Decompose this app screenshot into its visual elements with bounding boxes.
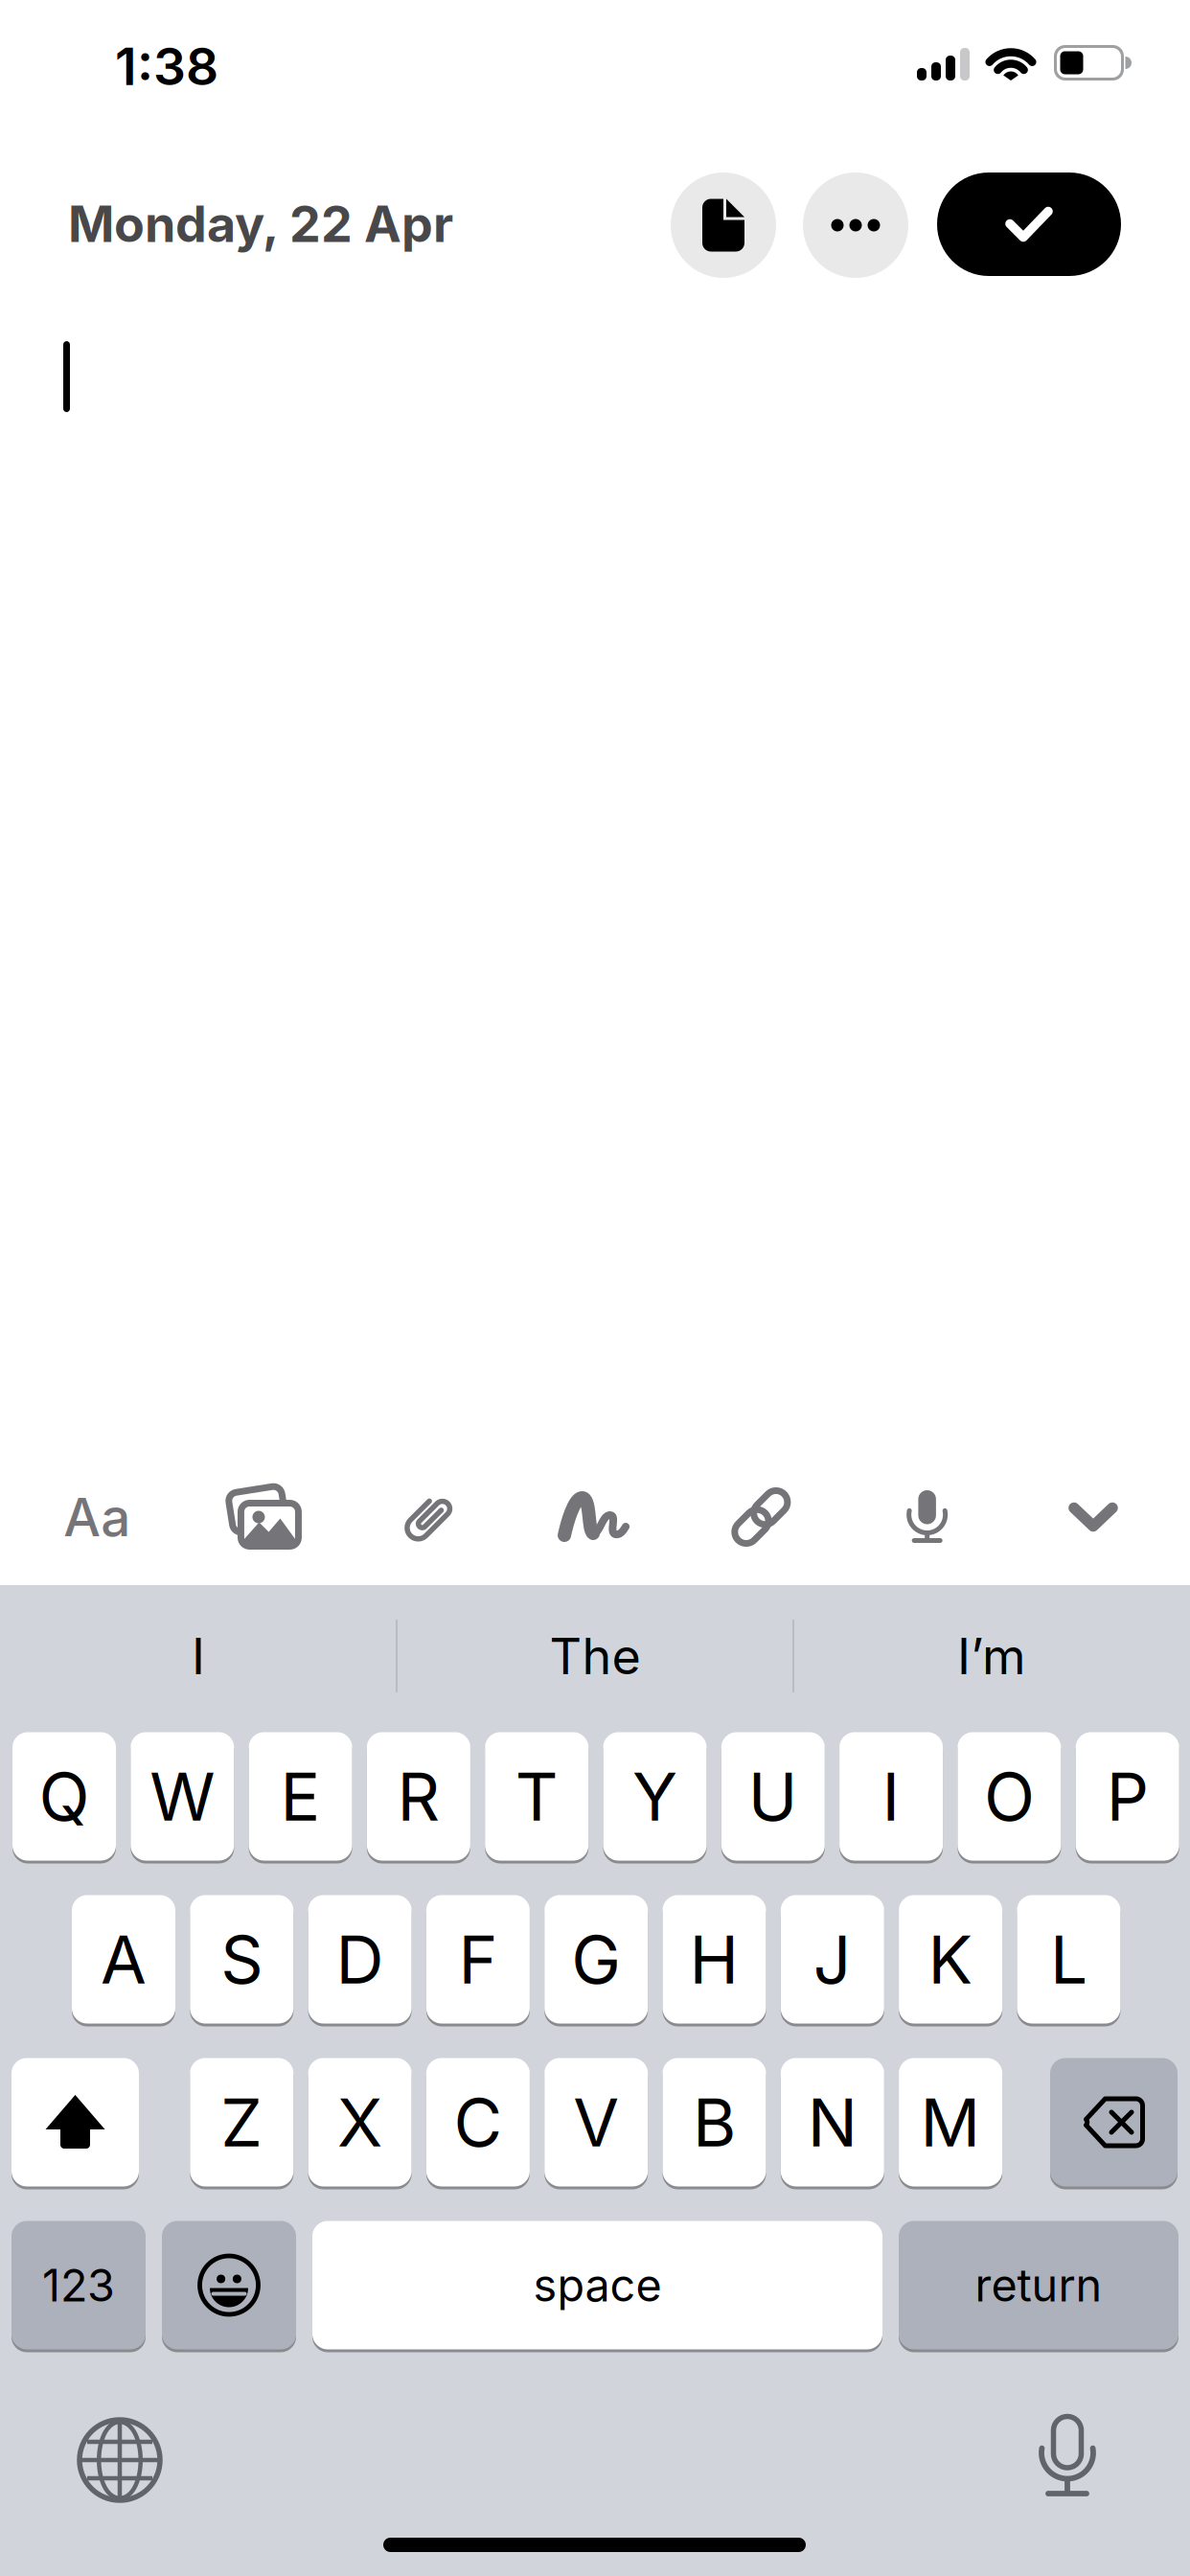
staticText: S: [221, 1920, 263, 1999]
button[interactable]: Y: [603, 1731, 707, 1862]
staticText: I’m: [957, 1627, 1026, 1685]
staticText: U: [748, 1757, 798, 1836]
staticText: G: [571, 1920, 621, 1999]
button[interactable]: space: [312, 2219, 882, 2351]
button[interactable]: P: [1076, 1731, 1179, 1862]
staticText: I: [192, 1627, 205, 1685]
staticText: 123: [42, 2259, 115, 2312]
button[interactable]: Record audio: [874, 1464, 980, 1570]
button[interactable]: Shift: [11, 2057, 139, 2188]
button[interactable]: More: [803, 172, 908, 278]
button[interactable]: I’m: [800, 1598, 1183, 1713]
staticText: space: [533, 2259, 662, 2312]
staticText: O: [984, 1757, 1035, 1836]
button[interactable]: M: [899, 2057, 1002, 2188]
button[interactable]: Done: [937, 172, 1121, 276]
button[interactable]: Templates: [671, 172, 776, 278]
button[interactable]: Add link: [708, 1464, 814, 1570]
button[interactable]: I: [839, 1731, 943, 1862]
staticText: N: [808, 2083, 857, 2161]
staticText: K: [928, 1920, 973, 1999]
button[interactable]: H: [663, 1894, 766, 2025]
button[interactable]: Q: [12, 1731, 116, 1862]
staticText: C: [454, 2083, 502, 2161]
button[interactable]: S: [190, 1894, 293, 2025]
staticText: R: [397, 1757, 440, 1836]
staticText: return: [975, 2259, 1102, 2312]
staticText: Aa: [63, 1486, 130, 1548]
button[interactable]: G: [544, 1894, 648, 2025]
button[interactable]: F: [426, 1894, 530, 2025]
staticText: 1:38: [115, 36, 218, 97]
staticText: E: [280, 1757, 321, 1836]
button[interactable]: The: [403, 1598, 787, 1713]
button[interactable]: Attach file: [376, 1464, 482, 1570]
staticText: Y: [632, 1757, 677, 1836]
button[interactable]: D: [308, 1894, 412, 2025]
staticText: F: [458, 1920, 498, 1999]
button[interactable]: V: [544, 2057, 648, 2188]
button[interactable]: T: [485, 1731, 588, 1862]
button[interactable]: I: [7, 1598, 390, 1713]
button[interactable]: U: [721, 1731, 825, 1862]
button[interactable]: Format: [44, 1464, 150, 1570]
button[interactable]: Delete: [1050, 2057, 1178, 2188]
staticText: D: [336, 1920, 384, 1999]
staticText: B: [693, 2083, 736, 2161]
staticText: W: [150, 1757, 215, 1836]
staticText: P: [1106, 1757, 1149, 1836]
button[interactable]: Hide toolbar: [1041, 1464, 1146, 1570]
button[interactable]: O: [958, 1731, 1061, 1862]
staticText: H: [689, 1920, 739, 1999]
button[interactable]: return: [899, 2219, 1179, 2351]
button[interactable]: Sketch: [542, 1464, 648, 1570]
button[interactable]: 123: [11, 2219, 146, 2351]
button[interactable]: L: [1017, 1894, 1120, 2025]
staticText: T: [515, 1757, 558, 1836]
button[interactable]: Photos: [210, 1464, 316, 1570]
button[interactable]: N: [781, 2057, 884, 2188]
staticText: M: [920, 2083, 981, 2161]
staticText: Z: [221, 2083, 263, 2161]
staticText: V: [573, 2083, 619, 2161]
button[interactable]: A: [72, 1894, 175, 2025]
staticText: The: [549, 1627, 641, 1685]
button[interactable]: Dictation: [1040, 2416, 1097, 2502]
button[interactable]: Next keyboard: [80, 2420, 160, 2500]
staticText: A: [101, 1920, 147, 1999]
button[interactable]: E: [249, 1731, 352, 1862]
button[interactable]: J: [781, 1894, 884, 2025]
button[interactable]: B: [663, 2057, 766, 2188]
staticText: J: [813, 1920, 852, 1999]
button[interactable]: R: [367, 1731, 470, 1862]
staticText: I: [882, 1757, 900, 1836]
staticText: Monday, 22 Apr: [68, 195, 453, 253]
button[interactable]: Z: [190, 2057, 293, 2188]
staticText: X: [337, 2083, 382, 2161]
button[interactable]: C: [426, 2057, 530, 2188]
staticText: L: [1050, 1920, 1087, 1999]
button[interactable]: Emoji: [162, 2219, 296, 2351]
staticText: Q: [39, 1757, 90, 1836]
button[interactable]: W: [131, 1731, 234, 1862]
button[interactable]: X: [308, 2057, 412, 2188]
button[interactable]: K: [899, 1894, 1002, 2025]
